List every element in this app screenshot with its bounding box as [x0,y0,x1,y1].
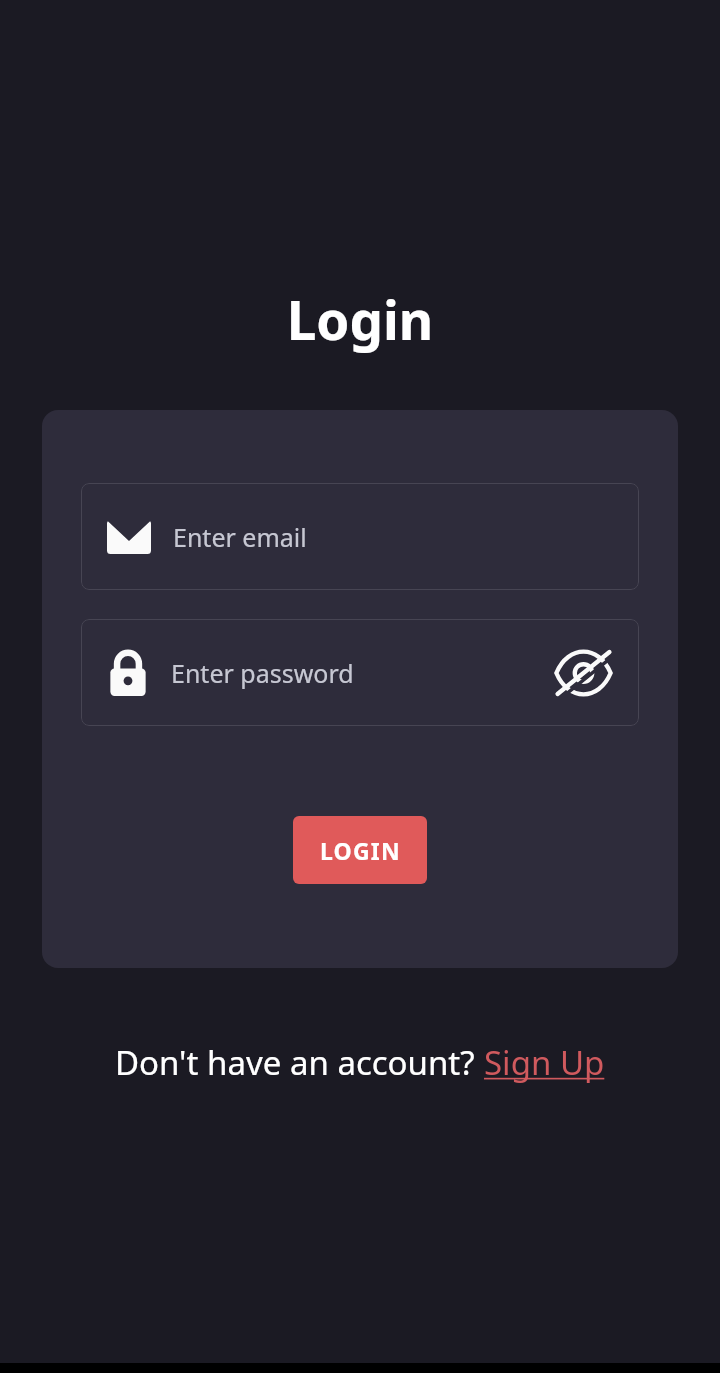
button[interactable]: LOGIN [293,816,427,884]
button[interactable]: Enter email [81,483,639,590]
staticText: Login [0,283,720,355]
staticText: Enter password [171,656,553,690]
button[interactable]: Enter password [81,619,639,726]
staticText: LOGIN [320,835,401,866]
staticText: Sign Up [484,1040,605,1085]
staticText: Don't have an account? [115,1040,484,1085]
staticText: Enter email [173,520,613,554]
button[interactable]: Don't have an account? [115,1040,605,1085]
button[interactable]: Show password [553,643,613,703]
